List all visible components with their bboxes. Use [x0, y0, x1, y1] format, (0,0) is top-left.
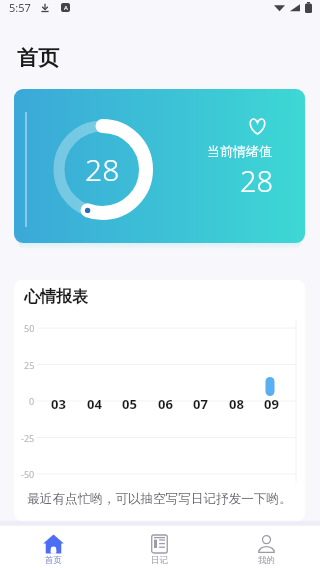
staticText: -25	[21, 432, 35, 444]
staticText: 当前情绪值	[207, 143, 272, 159]
staticText: 07	[193, 395, 208, 413]
staticText: 50	[24, 322, 35, 334]
staticText: 日记	[151, 555, 168, 566]
staticText: 08	[229, 395, 244, 413]
staticText: 心情报表	[24, 287, 88, 307]
staticText: 06	[158, 395, 173, 413]
staticText: 05	[122, 395, 137, 413]
staticText: 04	[87, 395, 102, 413]
button[interactable]: 我的	[213, 526, 320, 568]
staticText: 25	[24, 359, 35, 371]
staticText: 28	[85, 149, 120, 190]
staticText: 09	[264, 395, 279, 413]
button[interactable]: 28	[14, 89, 305, 243]
staticText: A	[64, 4, 68, 12]
staticText: 03	[51, 395, 66, 413]
staticText: 5:57	[9, 0, 31, 15]
button[interactable]: 首页	[0, 526, 106, 568]
staticText: 0	[29, 395, 35, 407]
button[interactable]: 日记	[106, 526, 213, 568]
staticText: 首页	[17, 45, 59, 71]
staticText: 最近有点忙哟，可以抽空写写日记抒发一下哟。	[14, 491, 305, 507]
staticText: -50	[21, 468, 35, 480]
staticText: 我的	[258, 555, 275, 566]
staticText: 首页	[45, 555, 62, 566]
staticText: 28	[240, 161, 274, 200]
